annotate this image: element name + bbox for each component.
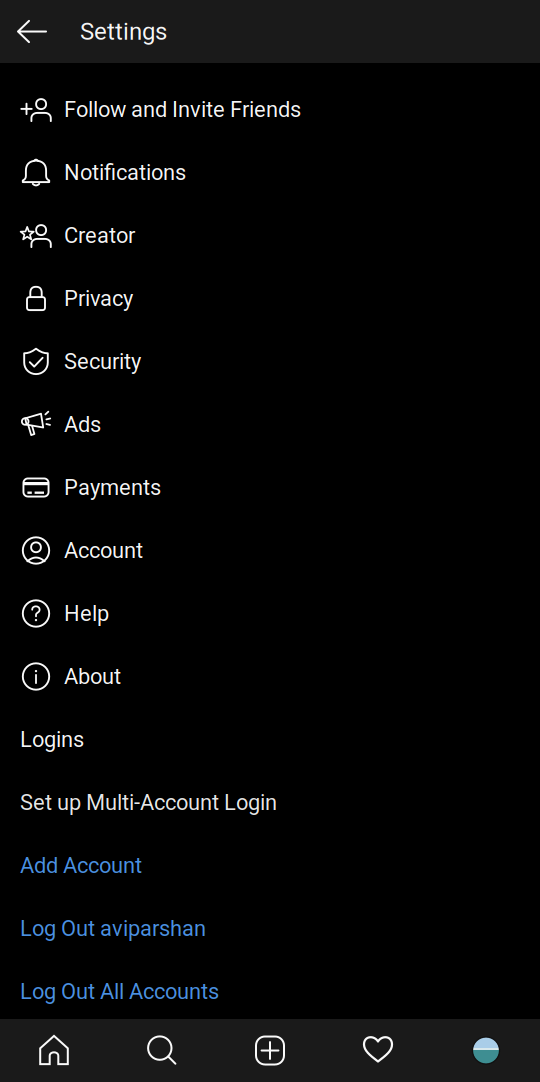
button[interactable]: Privacy: [0, 267, 540, 330]
staticText: Notifications: [64, 160, 186, 185]
button[interactable]: Logins: [0, 708, 540, 771]
staticText: Add Account: [20, 853, 142, 878]
button[interactable]: Set up Multi-Account Login: [0, 771, 540, 834]
staticText: Follow and Invite Friends: [64, 97, 301, 122]
button[interactable]: Search: [108, 1019, 216, 1082]
button[interactable]: Activity: [324, 1019, 432, 1082]
staticText: Ads: [64, 412, 101, 437]
button[interactable]: Back: [0, 0, 58, 63]
button[interactable]: Help: [0, 582, 540, 645]
button[interactable]: Notifications: [0, 141, 540, 204]
button[interactable]: Log Out All Accounts: [0, 960, 540, 1023]
button[interactable]: Security: [0, 330, 540, 393]
staticText: Security: [64, 349, 141, 374]
button[interactable]: Log Out aviparshan: [0, 897, 540, 960]
staticText: Privacy: [64, 286, 133, 311]
button[interactable]: About: [0, 645, 540, 708]
button[interactable]: Add Account: [0, 834, 540, 897]
staticText: Payments: [64, 475, 161, 500]
staticText: Logins: [20, 727, 84, 752]
staticText: Help: [64, 601, 109, 626]
button[interactable]: Payments: [0, 456, 540, 519]
button[interactable]: Profile: [432, 1019, 540, 1082]
button[interactable]: Ads: [0, 393, 540, 456]
staticText: Creator: [64, 223, 135, 248]
button[interactable]: Follow and Invite Friends: [0, 78, 540, 141]
staticText: Set up Multi-Account Login: [20, 790, 277, 815]
button[interactable]: Create: [216, 1019, 324, 1082]
button[interactable]: Home: [0, 1019, 108, 1082]
staticText: Log Out aviparshan: [20, 916, 206, 941]
staticText: Account: [64, 538, 143, 563]
staticText: About: [64, 664, 121, 689]
button[interactable]: Creator: [0, 204, 540, 267]
staticText: Settings: [80, 17, 167, 45]
button[interactable]: Account: [0, 519, 540, 582]
staticText: Log Out All Accounts: [20, 979, 219, 1004]
